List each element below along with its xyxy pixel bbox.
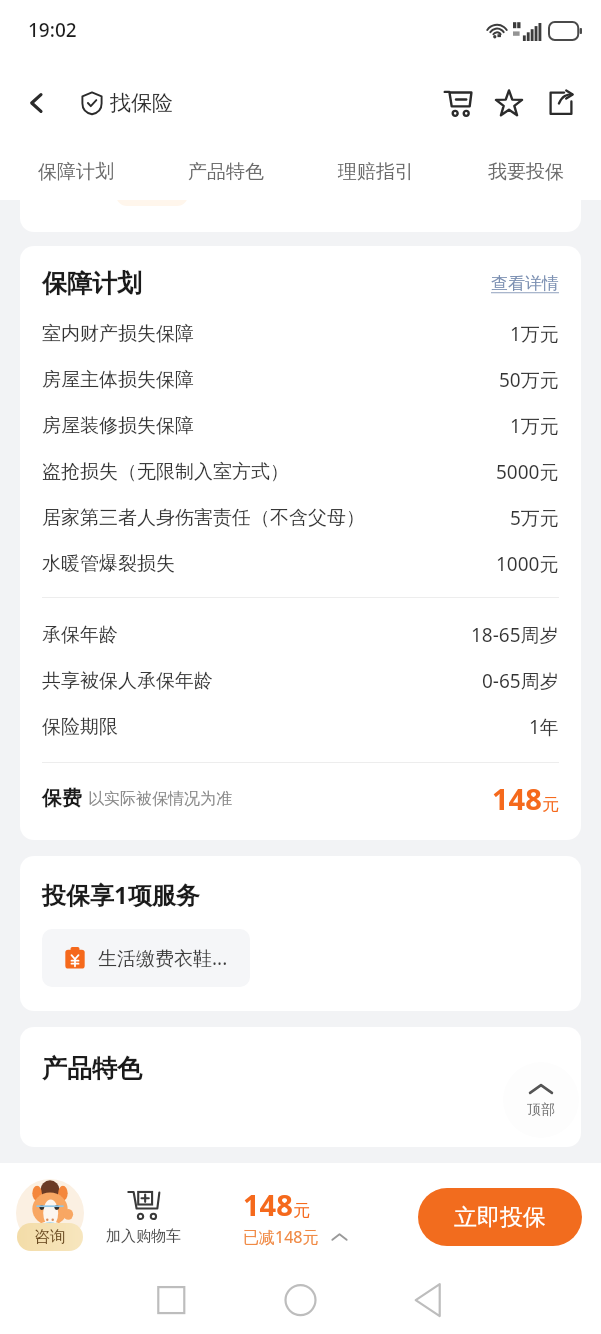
staticText: 产品特色 xyxy=(42,1053,142,1084)
staticText: 5000元 xyxy=(496,459,559,485)
button[interactable]: 产品特色 xyxy=(151,144,301,200)
button[interactable]: 立即投保 xyxy=(418,1188,582,1246)
staticText: 保费 xyxy=(42,786,82,811)
staticText: 以实际被保情况为准 xyxy=(88,789,232,809)
button[interactable]: Consult xyxy=(12,1179,88,1255)
button[interactable]: 148 xyxy=(243,1185,348,1248)
staticText: 盗抢损失（无限制入室方式） xyxy=(42,460,289,484)
button[interactable]: 生活缴费衣鞋... xyxy=(42,929,250,987)
staticText: 加入购物车 xyxy=(106,1227,181,1246)
staticText: 元 xyxy=(293,1200,310,1221)
staticText: 找保险 xyxy=(110,90,173,116)
staticText: 1年 xyxy=(529,714,559,740)
staticText: 50万元 xyxy=(499,367,559,393)
staticText: 18-65周岁 xyxy=(471,622,559,648)
staticText: 0-65周岁 xyxy=(482,668,559,694)
button[interactable]: Back to top xyxy=(503,1062,579,1138)
staticText: 理赔指引 xyxy=(338,160,414,184)
staticText: 已减148元 xyxy=(243,1226,319,1248)
staticText: 顶部 xyxy=(527,1101,555,1119)
staticText: 居家第三者人身伤害责任（不含父母） xyxy=(42,506,365,530)
staticText: 室内财产损失保障 xyxy=(42,322,194,346)
staticText: 承保年龄 xyxy=(42,623,118,647)
staticText: 查看详情 xyxy=(491,273,559,294)
button[interactable]: Favorite xyxy=(483,77,535,129)
button[interactable]: Back xyxy=(10,76,64,130)
staticText: 5万元 xyxy=(510,505,559,531)
button[interactable]: 保障计划 xyxy=(0,144,151,200)
staticText: 水暖管爆裂损失 xyxy=(42,552,175,576)
staticText: 1万元 xyxy=(510,321,559,347)
button[interactable]: 保障计划 xyxy=(42,268,559,299)
staticText: 产品特色 xyxy=(188,160,264,184)
button[interactable]: Cart xyxy=(431,77,483,129)
staticText: 148 xyxy=(243,1185,293,1224)
button[interactable]: Share xyxy=(535,77,587,129)
staticText: 我要投保 xyxy=(488,160,564,184)
staticText: 1000元 xyxy=(496,551,559,577)
button[interactable]: 我要投保 xyxy=(451,144,601,200)
button[interactable]: 理赔指引 xyxy=(301,144,451,200)
staticText: 共享被保人承保年龄 xyxy=(42,669,213,693)
button[interactable]: 加入购物车 xyxy=(100,1188,186,1246)
staticText: 房屋主体损失保障 xyxy=(42,368,194,392)
staticText: 148 xyxy=(492,779,542,818)
staticText: 保障计划 xyxy=(38,160,114,184)
staticText: 1万元 xyxy=(510,413,559,439)
staticText: 咨询 xyxy=(34,1227,66,1247)
staticText: 19:02 xyxy=(28,17,77,43)
staticText: 保障计划 xyxy=(42,268,142,299)
staticText: 立即投保 xyxy=(454,1203,546,1232)
staticText: 元 xyxy=(542,794,559,815)
staticText: 房屋装修损失保障 xyxy=(42,414,194,438)
staticText: 投保享1项服务 xyxy=(42,878,200,911)
button[interactable]: 找保险 xyxy=(80,90,173,116)
staticText: 保险期限 xyxy=(42,715,118,739)
staticText: 生活缴费衣鞋... xyxy=(98,945,228,971)
